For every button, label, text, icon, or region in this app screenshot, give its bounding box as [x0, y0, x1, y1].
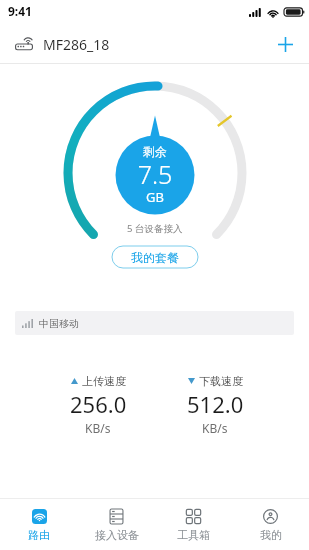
staticText: 工具箱 [177, 528, 210, 542]
staticText: 我的 [260, 528, 282, 542]
staticText: 我的套餐 [131, 250, 179, 265]
staticText: KB/s [202, 420, 228, 436]
button[interactable]: 我的套餐 [112, 246, 198, 268]
staticText: GB [95, 188, 215, 206]
button[interactable]: 工具箱 [155, 499, 232, 550]
staticText: 9:41 [8, 3, 32, 19]
button[interactable]: 我的 [232, 499, 309, 550]
staticText: 7.5 [95, 157, 215, 191]
button[interactable]: 接入设备 [78, 499, 155, 550]
staticText: 512.0 [187, 389, 244, 419]
button[interactable]: 路由 [0, 499, 78, 550]
staticText: 5 台设备接入 [127, 222, 183, 235]
staticText: 接入设备 [95, 528, 139, 542]
staticText: 256.0 [70, 389, 127, 419]
staticText: 下载速度 [199, 374, 243, 388]
staticText: 剩余 [95, 144, 215, 159]
staticText: 路由 [28, 528, 50, 542]
staticText: MF286_18 [43, 35, 110, 54]
staticText: 上传速度 [82, 374, 126, 388]
staticText: KB/s [85, 420, 111, 436]
staticText: 中国移动 [39, 317, 79, 330]
button[interactable]: Add device [268, 27, 302, 61]
